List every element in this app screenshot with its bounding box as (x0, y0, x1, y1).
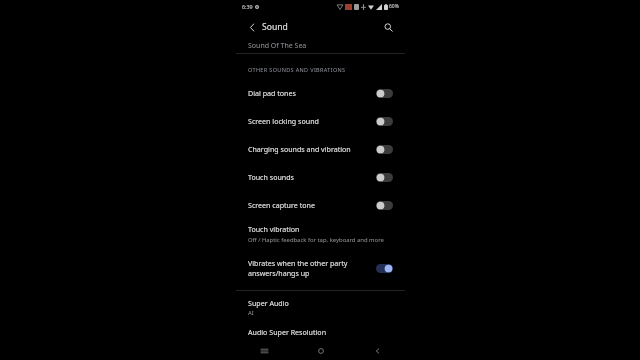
staticText: Touch vibration (248, 224, 300, 234)
staticText: answers/hangs up (248, 268, 310, 278)
staticText: Screen capture tone (248, 200, 371, 210)
staticText: Charging sounds and vibration (248, 144, 371, 154)
button[interactable]: Back (245, 20, 259, 34)
staticText: AI (248, 309, 254, 317)
button[interactable]: Off (376, 173, 393, 182)
staticText: 60% (389, 3, 399, 10)
button[interactable]: Off (376, 201, 393, 210)
button[interactable]: Off (376, 89, 393, 98)
staticText: Super Audio (248, 298, 289, 308)
staticText: 6:39 (242, 3, 253, 10)
button[interactable]: Search (381, 20, 396, 35)
staticText: Sound Of The Sea (248, 41, 307, 51)
button[interactable]: Home (293, 342, 349, 360)
button[interactable]: Off (376, 145, 393, 154)
button[interactable]: Off (376, 117, 393, 126)
staticText: Touch sounds (248, 172, 371, 182)
button[interactable]: Super Audio (236, 295, 405, 320)
button[interactable]: Touch sounds (236, 163, 405, 191)
button[interactable]: Touch vibration (236, 219, 405, 249)
button[interactable]: Dial pad tones (236, 79, 405, 107)
staticText: Off / Haptic feedback for tap, keyboard … (248, 236, 384, 244)
staticText: Dial pad tones (248, 88, 371, 98)
button[interactable]: Sound Of The Sea (236, 38, 405, 53)
button[interactable]: Back (349, 342, 405, 360)
staticText: Audio Super Resolution (248, 327, 327, 337)
staticText: OTHER SOUNDS AND VIBRATIONS (248, 66, 346, 73)
button[interactable]: On (376, 264, 393, 273)
button[interactable]: Charging sounds and vibration (236, 135, 405, 163)
staticText: Sound (262, 21, 288, 33)
staticText: Screen locking sound (248, 116, 371, 126)
button[interactable]: Audio Super Resolution (236, 327, 405, 337)
staticText: Vibrates when the other party (248, 258, 348, 268)
button[interactable]: Vibrates when the other party (236, 254, 405, 282)
button[interactable]: Screen locking sound (236, 107, 405, 135)
button[interactable]: Screen capture tone (236, 191, 405, 219)
button[interactable]: Recents (236, 342, 293, 360)
